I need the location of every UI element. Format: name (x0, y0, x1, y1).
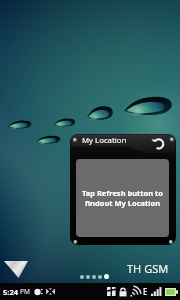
button[interactable]: Refresh (148, 134, 169, 154)
button[interactable]: Tap Refresh button to findout My Locatio… (76, 159, 169, 237)
staticText: My Location (82, 135, 127, 146)
button[interactable]: Open app drawer (3, 259, 29, 279)
staticText: TH GSM (127, 261, 169, 276)
staticText: 5:24 (3, 287, 18, 297)
staticText: Tap Refresh button to findout My Locatio… (76, 188, 169, 208)
staticText: E (143, 286, 148, 297)
staticText: PM (20, 287, 30, 296)
